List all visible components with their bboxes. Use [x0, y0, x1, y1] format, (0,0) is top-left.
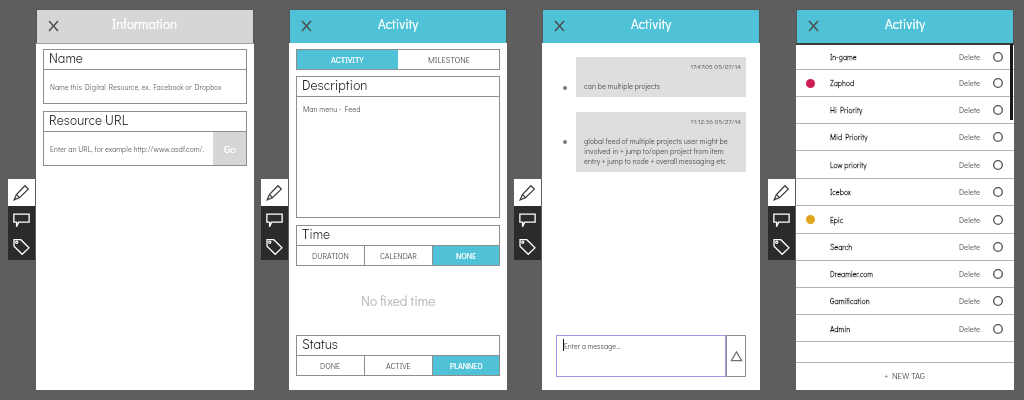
staticText: Zaphod: [830, 78, 959, 88]
staticText: Enter an URL, for example http://www.asd…: [50, 144, 204, 154]
staticText: Activity: [885, 15, 926, 32]
staticText: Delete: [959, 187, 981, 197]
staticText: can be multiple projects: [584, 81, 661, 91]
button[interactable]: Send: [726, 335, 746, 377]
staticText: Delete: [959, 78, 981, 88]
staticText: 11:12:36 05/27/14: [584, 117, 741, 126]
staticText: ACTIVE: [386, 361, 411, 371]
button[interactable]: Icebox: [796, 179, 1014, 205]
button[interactable]: In-game: [796, 44, 1014, 69]
staticText: Delete: [959, 242, 981, 252]
button[interactable]: Edit: [8, 179, 35, 206]
staticText: global feed of multiple projects user mi…: [584, 136, 728, 166]
staticText: CALENDAR: [380, 251, 417, 261]
staticText: Name this Digital Resource, ex. Facebook…: [50, 82, 222, 92]
button[interactable]: Close: [41, 14, 65, 38]
staticText: Delete: [959, 52, 981, 62]
staticText: NONE: [456, 251, 477, 261]
staticText: Mid Priority: [830, 132, 959, 142]
button[interactable]: Gamification: [796, 288, 1014, 314]
button[interactable]: Mid Priority: [796, 124, 1014, 150]
button[interactable]: Comments: [768, 206, 795, 233]
button[interactable]: Edit: [514, 179, 541, 206]
staticText: Gamification: [830, 296, 959, 306]
staticText: Delete: [959, 269, 981, 279]
button[interactable]: Low priority: [796, 151, 1014, 178]
button[interactable]: ACTIVE: [365, 356, 432, 376]
button[interactable]: Hi Priority: [796, 97, 1014, 123]
staticText: Activity: [631, 15, 672, 32]
staticText: Search: [830, 242, 959, 252]
staticText: Low priority: [830, 160, 959, 170]
button[interactable]: Search: [796, 234, 1014, 260]
button[interactable]: Tags: [8, 233, 35, 260]
button[interactable]: CALENDAR: [365, 246, 432, 266]
staticText: Description: [302, 76, 368, 94]
staticText: Information: [112, 15, 178, 32]
button[interactable]: Close: [547, 14, 571, 38]
staticText: ACTIVITY: [331, 54, 364, 65]
staticText: Delete: [959, 160, 981, 170]
button[interactable]: Tags: [261, 233, 288, 260]
button[interactable]: ACTIVITY: [296, 49, 398, 70]
staticText: MILESTONE: [428, 54, 470, 65]
staticText: Epic: [830, 215, 959, 225]
staticText: Icebox: [830, 187, 959, 197]
button[interactable]: Close: [294, 14, 318, 38]
staticText: Admin: [830, 324, 959, 334]
button[interactable]: Edit: [261, 179, 288, 206]
button[interactable]: Dreamler.com: [796, 261, 1014, 287]
staticText: Enter a message...: [564, 341, 621, 351]
staticText: Time: [302, 225, 331, 243]
staticText: Delete: [959, 132, 981, 142]
staticText: Delete: [959, 215, 981, 225]
staticText: Name: [49, 49, 83, 67]
staticText: In-game: [830, 52, 959, 62]
staticText: 17:47:05 05/07/14: [584, 62, 741, 71]
button[interactable]: Tags: [768, 233, 795, 260]
staticText: Resource URL: [49, 111, 129, 129]
staticText: No fixed time: [361, 292, 436, 310]
button[interactable]: Tags: [514, 233, 541, 260]
button[interactable]: + NEW TAG: [796, 363, 1014, 390]
button[interactable]: Admin: [796, 315, 1014, 342]
button[interactable]: Comments: [514, 206, 541, 233]
button[interactable]: PLANNED: [433, 356, 500, 376]
button[interactable]: Zaphod: [796, 70, 1014, 96]
button[interactable]: Epic: [796, 206, 1014, 233]
staticText: Go: [224, 142, 236, 156]
staticText: PLANNED: [450, 361, 483, 371]
staticText: + NEW TAG: [884, 370, 926, 381]
staticText: Man menu - Feed: [303, 104, 361, 114]
button[interactable]: Go: [213, 132, 247, 166]
staticText: Activity: [378, 15, 419, 32]
staticText: Delete: [959, 296, 981, 306]
staticText: Delete: [959, 324, 981, 334]
button[interactable]: Enter a message...: [556, 335, 726, 377]
staticText: DONE: [320, 361, 341, 371]
staticText: Dreamler.com: [830, 269, 959, 279]
staticText: Hi Priority: [830, 105, 959, 115]
staticText: DURATION: [312, 251, 349, 261]
button[interactable]: Comments: [8, 206, 35, 233]
button[interactable]: DURATION: [296, 246, 364, 266]
staticText: Delete: [959, 105, 981, 115]
button[interactable]: Edit: [768, 179, 795, 206]
button[interactable]: Close: [801, 14, 825, 38]
staticText: Status: [302, 335, 339, 353]
button[interactable]: MILESTONE: [398, 49, 500, 70]
button[interactable]: DONE: [296, 356, 364, 376]
button[interactable]: NONE: [433, 246, 500, 266]
button[interactable]: Comments: [261, 206, 288, 233]
